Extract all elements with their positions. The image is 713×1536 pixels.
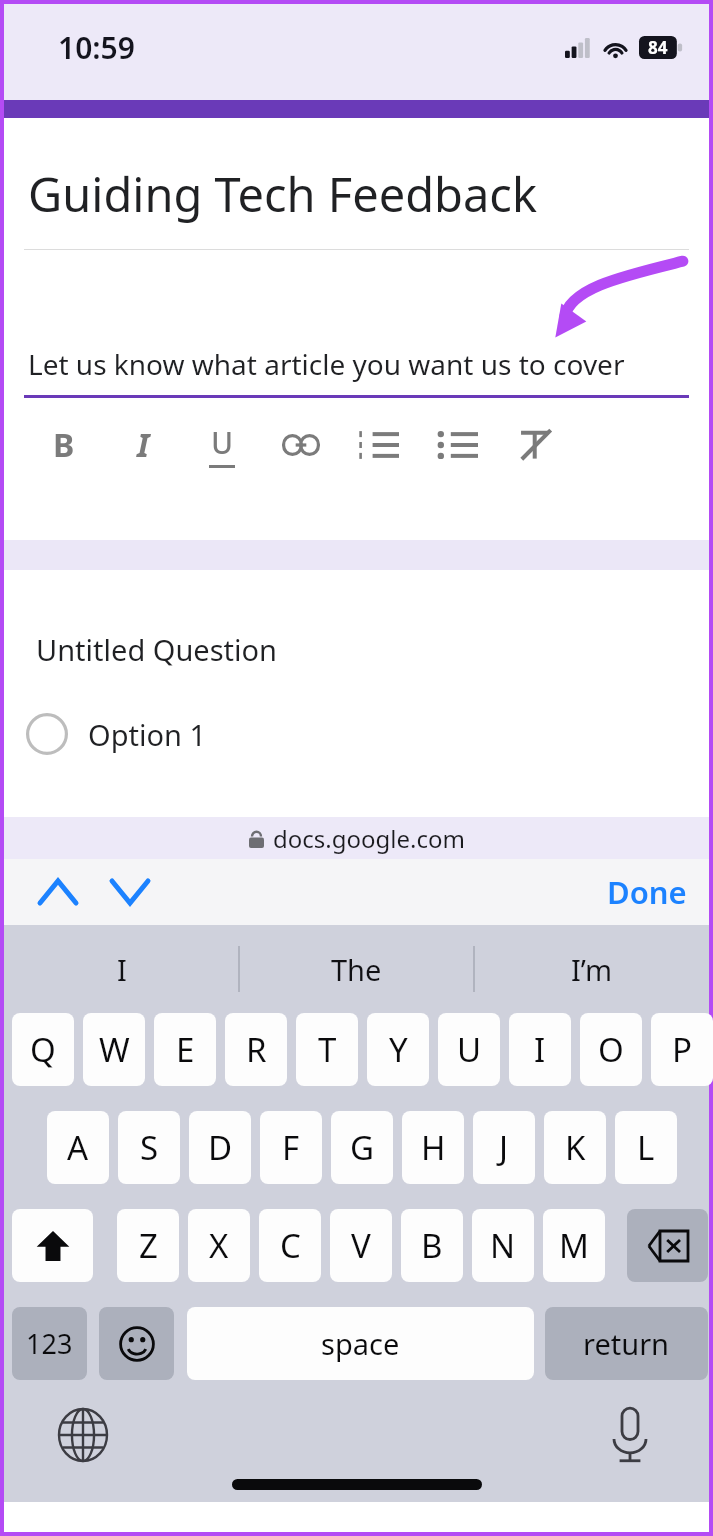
button[interactable]: Done (585, 861, 709, 923)
button[interactable]: C (259, 1209, 321, 1282)
staticText: I (534, 1027, 546, 1072)
button[interactable]: Clear formatting (510, 418, 564, 472)
button[interactable]: B (401, 1209, 463, 1282)
staticText: 10:59 (58, 27, 135, 68)
staticText: N (490, 1223, 516, 1268)
staticText: L (637, 1125, 655, 1170)
staticText: 123 (26, 1325, 73, 1362)
staticText: W (99, 1027, 130, 1072)
button[interactable]: I’m (474, 925, 709, 1013)
staticText: docs.google.com (273, 822, 465, 855)
button[interactable]: O (580, 1013, 642, 1086)
button[interactable]: docs.google.com (4, 817, 709, 859)
staticText: R (246, 1027, 267, 1072)
button[interactable]: space (187, 1307, 534, 1380)
button[interactable]: A (47, 1111, 109, 1184)
button[interactable]: E (154, 1013, 216, 1086)
button[interactable]: V (330, 1209, 392, 1282)
button[interactable]: Numbered list (352, 418, 406, 472)
staticText: Y (389, 1027, 408, 1072)
button[interactable]: I (509, 1013, 571, 1086)
button[interactable]: F (260, 1111, 322, 1184)
staticText: S (140, 1125, 159, 1170)
staticText: M (559, 1223, 589, 1268)
staticText: 84 (648, 36, 668, 59)
button[interactable]: R (225, 1013, 287, 1086)
button[interactable]: Bulleted list (431, 418, 485, 472)
button[interactable]: Next field (102, 864, 158, 920)
staticText: Let us know what article you want us to … (28, 345, 625, 383)
staticText: Option 1 (88, 715, 207, 754)
button[interactable]: Underline (195, 418, 249, 472)
staticText: Done (607, 871, 687, 913)
staticText: K (565, 1125, 586, 1170)
staticText: Untitled Question (36, 630, 277, 669)
button[interactable]: D (189, 1111, 251, 1184)
button[interactable]: Option 1 (4, 709, 709, 759)
button[interactable]: Q (12, 1013, 74, 1086)
staticText: Z (139, 1223, 158, 1268)
button[interactable]: The (239, 925, 474, 1013)
button[interactable]: Bold (37, 418, 91, 472)
button[interactable]: Backspace (627, 1209, 708, 1282)
staticText: U (211, 422, 234, 463)
button[interactable]: M (543, 1209, 605, 1282)
staticText: The (331, 950, 382, 989)
button[interactable]: N (472, 1209, 534, 1282)
button[interactable]: Emoji (99, 1307, 174, 1380)
button[interactable]: T (296, 1013, 358, 1086)
staticText: return (583, 1324, 670, 1363)
button[interactable]: Y (367, 1013, 429, 1086)
staticText: X (209, 1223, 229, 1268)
button[interactable]: L (615, 1111, 677, 1184)
staticText: E (176, 1027, 195, 1072)
staticText: D (208, 1125, 233, 1170)
button[interactable]: 123 (12, 1307, 87, 1380)
button[interactable]: Italic (116, 418, 170, 472)
button[interactable]: Previous field (30, 864, 86, 920)
staticText: T (318, 1027, 337, 1072)
staticText: A (67, 1125, 89, 1170)
staticText: F (282, 1125, 300, 1170)
staticText: I’m (571, 950, 613, 989)
staticText: space (321, 1324, 400, 1363)
staticText: O (598, 1027, 624, 1072)
button[interactable]: K (544, 1111, 606, 1184)
button[interactable]: H (402, 1111, 464, 1184)
button[interactable]: I (4, 925, 239, 1013)
button[interactable]: G (331, 1111, 393, 1184)
button[interactable]: Change keyboard language (50, 1402, 116, 1468)
staticText: U (457, 1027, 482, 1072)
button[interactable]: X (188, 1209, 250, 1282)
staticText: J (499, 1125, 509, 1170)
staticText: Guiding Tech Feedback (28, 162, 538, 226)
button[interactable]: Z (117, 1209, 179, 1282)
button[interactable]: P (651, 1013, 713, 1086)
staticText: P (672, 1027, 692, 1072)
button[interactable]: W (83, 1013, 145, 1086)
staticText: B (53, 423, 75, 467)
staticText: I (117, 950, 127, 989)
button[interactable]: Insert link (274, 418, 328, 472)
button[interactable]: U (438, 1013, 500, 1086)
button[interactable]: J (473, 1111, 535, 1184)
button[interactable]: Dictation (597, 1402, 663, 1468)
staticText: B (421, 1223, 443, 1268)
staticText: Q (30, 1027, 56, 1072)
staticText: V (351, 1223, 371, 1268)
staticText: H (421, 1125, 446, 1170)
staticText: I (137, 423, 150, 467)
button[interactable]: S (118, 1111, 180, 1184)
staticText: C (280, 1223, 301, 1268)
button[interactable]: Shift (12, 1209, 93, 1282)
staticText: G (350, 1125, 375, 1170)
button[interactable]: return (545, 1307, 708, 1380)
